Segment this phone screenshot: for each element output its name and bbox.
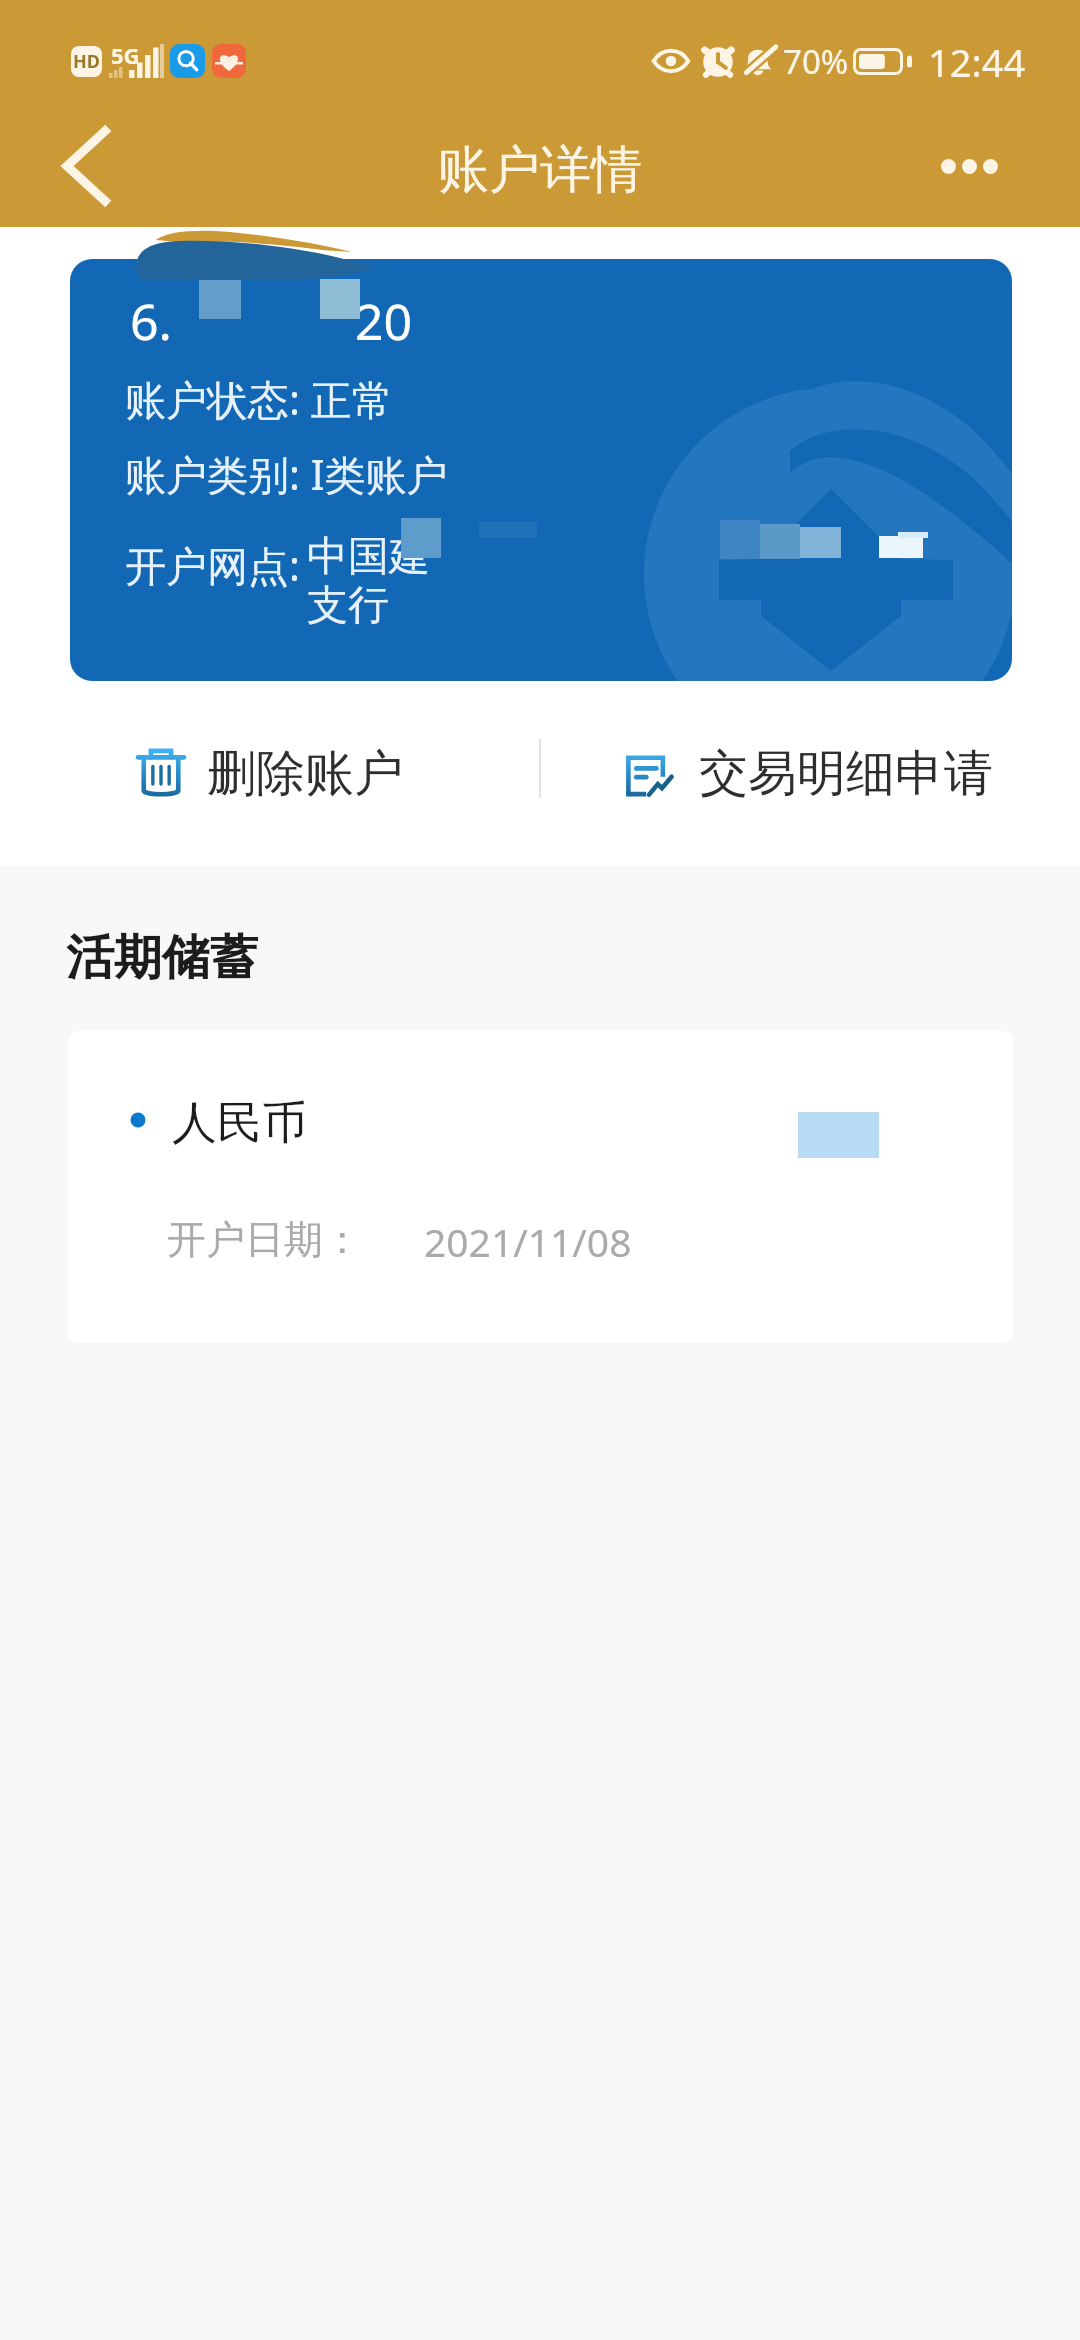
- staticText: 6.: [130, 287, 172, 355]
- button[interactable]: 删除账户: [0, 681, 540, 866]
- staticText: 2021/11/08: [424, 1215, 632, 1268]
- staticText: 开户日期：: [167, 1215, 362, 1264]
- staticText: 70%: [783, 39, 849, 84]
- staticText: 开户网点:: [125, 537, 300, 593]
- staticText: 交易明细申请: [699, 743, 993, 805]
- staticText: 支行: [307, 580, 389, 632]
- button[interactable]: 人民币: [68, 1031, 1013, 1343]
- button[interactable]: Back: [30, 110, 141, 221]
- staticText: 账户详情: [438, 138, 642, 202]
- staticText: 人民币: [172, 1095, 307, 1152]
- button[interactable]: More options: [915, 112, 1023, 220]
- button[interactable]: 6.: [70, 259, 1012, 681]
- staticText: 删除账户: [207, 743, 403, 805]
- staticText: 中国建: [307, 531, 430, 583]
- button[interactable]: 交易明细申请: [540, 681, 1080, 866]
- staticText: 账户状态: 正常: [125, 371, 393, 427]
- staticText: HD: [73, 49, 100, 74]
- staticText: 账户类别: I类账户: [125, 446, 448, 502]
- staticText: 5G: [111, 40, 140, 70]
- staticText: 20: [355, 287, 413, 355]
- staticText: 活期储蓄: [66, 928, 258, 988]
- staticText: 12:44: [928, 36, 1026, 88]
